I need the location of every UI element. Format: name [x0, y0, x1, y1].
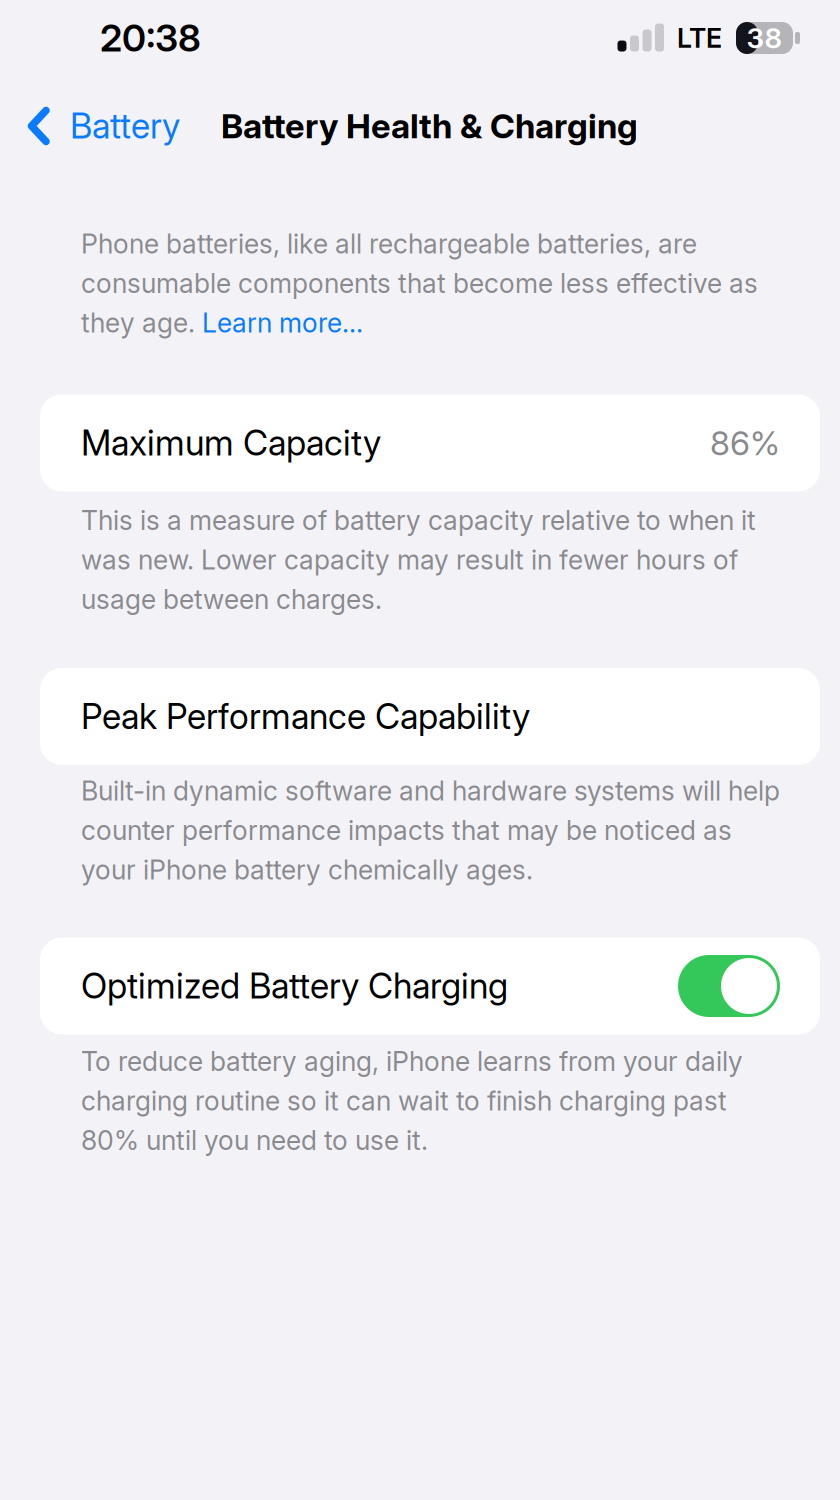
- staticText: Peak Performance Capability: [81, 695, 530, 737]
- staticText: Learn more...: [202, 307, 363, 339]
- button[interactable]: Learn more...: [202, 307, 363, 339]
- staticText: LTE: [677, 22, 722, 54]
- staticText: 20:38: [100, 15, 201, 61]
- button[interactable]: Peak Performance Capability: [0, 668, 820, 765]
- staticText: Optimized Battery Charging: [81, 965, 508, 1007]
- staticText: 38: [746, 21, 782, 55]
- staticText: 86%: [710, 423, 780, 463]
- staticText: counter performance impacts that may be …: [81, 814, 732, 846]
- staticText: Battery: [70, 105, 180, 147]
- staticText: consumable components that become less e…: [81, 267, 758, 299]
- staticText: they age.: [81, 307, 202, 339]
- staticText: 80% until you need to use it.: [81, 1124, 428, 1156]
- staticText: Battery Health & Charging: [221, 105, 638, 146]
- staticText: To reduce battery aging, iPhone learns f…: [81, 1045, 743, 1077]
- staticText: Built-in dynamic software and hardware s…: [81, 775, 780, 807]
- staticText: Maximum Capacity: [81, 422, 381, 464]
- staticText: usage between charges.: [81, 583, 382, 615]
- staticText: your iPhone battery chemically ages.: [81, 854, 533, 886]
- button[interactable]: Optimized Battery Charging: [678, 955, 780, 1017]
- staticText: Phone batteries, like all rechargeable b…: [81, 228, 697, 260]
- button[interactable]: Battery: [0, 92, 194, 160]
- staticText: was new. Lower capacity may result in fe…: [81, 544, 738, 576]
- staticText: charging routine so it can wait to finis…: [81, 1085, 727, 1117]
- staticText: This is a measure of battery capacity re…: [81, 504, 756, 536]
